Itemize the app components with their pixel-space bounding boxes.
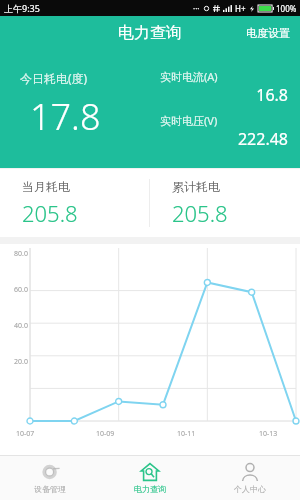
staticText: 10-07 [16,429,35,439]
staticText: 205.8 [172,198,228,228]
button[interactable]: 电度设置 [236,20,300,46]
staticText: 电力查询 [134,484,166,494]
staticText: 10-09 [96,429,115,439]
staticText: 20.0 [0,357,28,367]
staticText: 今日耗电(度) [20,70,88,86]
staticText: 累计耗电 [172,179,220,194]
staticText: 电度设置 [246,26,290,40]
staticText: 实时电流(A) [160,69,218,84]
staticText: 10-11 [177,429,196,439]
button[interactable]: 设备管理 [0,456,100,500]
staticText: 实时电压(V) [160,113,218,128]
staticText: 设备管理 [34,484,66,494]
button[interactable]: 电力查询 [100,456,200,500]
staticText: 个人中心 [234,484,266,494]
staticText: H+ [235,3,246,14]
staticText: 80.0 [0,249,28,259]
staticText: 60.0 [0,285,28,295]
staticText: 40.0 [0,321,28,331]
button[interactable]: 个人中心 [200,456,300,500]
staticText: 上午9:35 [4,2,40,14]
staticText: 电力查询 [118,23,182,43]
staticText: 222.48 [160,128,288,150]
staticText: 205.8 [22,198,78,228]
staticText: 100% [276,3,297,14]
button[interactable]: 当月耗电 [0,169,149,237]
button[interactable]: 累计耗电 [150,169,300,237]
staticText: 当月耗电 [22,179,70,194]
staticText: 16.8 [160,84,288,106]
staticText: 17.8 [30,92,101,141]
staticText: 10-13 [259,429,278,439]
staticText: ··· [193,3,200,14]
